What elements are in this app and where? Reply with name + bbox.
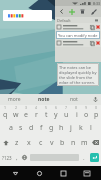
button[interactable]: more — [0, 94, 29, 105]
button[interactable]: Voice input — [89, 94, 101, 105]
staticText: d — [29, 123, 34, 133]
button[interactable]: Back — [8, 166, 22, 180]
staticText: more — [8, 96, 21, 103]
staticText: 4 — [35, 105, 38, 110]
staticText: p — [94, 110, 99, 120]
staticText: , — [16, 154, 18, 162]
button[interactable]: 9 — [81, 105, 91, 120]
staticText: 6 — [55, 105, 58, 110]
staticText: u — [64, 110, 69, 120]
button[interactable]: Home — [32, 166, 46, 180]
staticText: 8 — [75, 105, 78, 110]
staticText: 0 — [95, 105, 98, 110]
staticText: m — [81, 138, 88, 148]
staticText: 2 — [15, 105, 18, 110]
staticText: 1 — [4, 105, 7, 110]
staticText: b — [60, 138, 65, 148]
button[interactable]: You can modify node — [56, 31, 100, 39]
button[interactable]: Hide keyboard — [80, 166, 94, 180]
staticText: t — [45, 110, 48, 120]
button[interactable]: Recents — [56, 166, 70, 180]
staticText: 5 — [45, 105, 48, 110]
button[interactable]: b — [57, 135, 68, 150]
staticText: g — [49, 123, 54, 133]
staticText: l — [90, 123, 92, 133]
button[interactable]: Symbols — [0, 150, 13, 165]
button[interactable]: Enter — [87, 150, 101, 165]
staticText: r — [35, 110, 38, 120]
staticText: j — [70, 123, 72, 133]
staticText: z — [15, 138, 19, 148]
button[interactable]: 2 — [11, 105, 21, 120]
button[interactable] — [55, 23, 101, 31]
staticText: h — [59, 123, 64, 133]
button[interactable]: c — [35, 135, 46, 150]
staticText: note — [38, 96, 50, 103]
button[interactable]: More options — [89, 7, 98, 16]
button[interactable]: Google search — [3, 10, 52, 21]
staticText: ?123 — [2, 155, 12, 161]
staticText: 3 — [25, 105, 28, 110]
staticText: n — [71, 138, 76, 148]
button[interactable]: Back — [57, 7, 66, 16]
button[interactable]: Change language — [20, 150, 29, 165]
staticText: The notes can be displayed quickly by th… — [59, 65, 97, 84]
button[interactable]: d — [26, 120, 36, 135]
button[interactable]: j — [66, 120, 76, 135]
staticText: k — [79, 123, 83, 133]
button[interactable]: 3 — [21, 105, 31, 120]
button[interactable]: Add note — [67, 7, 76, 16]
staticText: w — [13, 110, 19, 120]
button[interactable]: 0 — [91, 105, 101, 120]
staticText: not — [70, 96, 78, 103]
button[interactable]: Shift — [0, 135, 11, 150]
button[interactable]: z — [11, 135, 23, 150]
button[interactable]: 5 — [41, 105, 51, 120]
button[interactable] — [55, 39, 101, 47]
staticText: Default — [57, 18, 71, 23]
button[interactable]: note — [29, 94, 59, 105]
staticText: 7 — [65, 105, 68, 110]
staticText: f — [40, 123, 43, 133]
button[interactable]: v — [46, 135, 57, 150]
staticText: x — [27, 138, 31, 148]
staticText: y — [54, 110, 58, 120]
button[interactable]: 1 — [0, 105, 11, 120]
button[interactable]: Backspace — [90, 135, 101, 150]
button[interactable]: l — [86, 120, 96, 135]
staticText: v — [50, 138, 54, 148]
staticText: a — [9, 123, 13, 133]
button[interactable]: Comma — [13, 150, 20, 165]
button[interactable]: x — [23, 135, 35, 150]
button[interactable]: 4 — [31, 105, 41, 120]
staticText: . — [83, 154, 85, 162]
button[interactable]: n — [68, 135, 79, 150]
button[interactable]: 6 — [51, 105, 61, 120]
button[interactable]: 7 — [61, 105, 71, 120]
staticText: o — [84, 110, 89, 120]
staticText: You can modify node — [58, 33, 98, 38]
staticText: e — [24, 110, 28, 120]
staticText: 9 — [85, 105, 88, 110]
button[interactable]: not — [59, 94, 89, 105]
button[interactable]: a — [5, 120, 16, 135]
button[interactable]: s — [16, 120, 26, 135]
button[interactable]: Delete — [78, 7, 87, 16]
staticText: c — [39, 138, 43, 148]
staticText: q — [3, 110, 8, 120]
button[interactable]: m — [79, 135, 90, 150]
button[interactable]: Period — [80, 150, 87, 165]
button[interactable]: g — [46, 120, 56, 135]
staticText: s — [19, 123, 23, 133]
button[interactable]: k — [76, 120, 86, 135]
button[interactable]: f — [36, 120, 46, 135]
staticText: i — [76, 110, 78, 120]
button[interactable]: h — [56, 120, 66, 135]
staticText: 8:33 — [93, 1, 100, 6]
button[interactable]: 8 — [71, 105, 81, 120]
